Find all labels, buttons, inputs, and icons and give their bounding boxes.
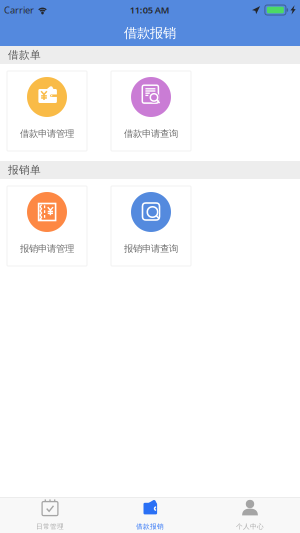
staticText: 借款申请查询	[124, 128, 178, 139]
button[interactable]: 借款申请管理	[7, 71, 87, 151]
staticText: 个人中心	[236, 522, 264, 531]
staticText: 报销申请管理	[20, 243, 74, 254]
staticText: 报销申请查询	[124, 243, 178, 254]
staticText: 借款申请管理	[20, 128, 74, 139]
button[interactable]: 报销申请查询	[111, 186, 191, 266]
staticText: Carrier	[4, 4, 34, 16]
button[interactable]: 借款报销	[100, 497, 200, 533]
button[interactable]: 报销申请管理	[7, 186, 87, 266]
staticText: 借款报销	[136, 522, 164, 531]
staticText: 11:05 AM	[130, 4, 170, 16]
staticText: 借款报销	[124, 25, 176, 41]
button[interactable]: 借款申请查询	[111, 71, 191, 151]
button[interactable]: 日常管理	[0, 497, 100, 533]
staticText: 借款单	[8, 48, 41, 61]
staticText: 日常管理	[36, 522, 64, 531]
staticText: 报销单	[8, 163, 41, 176]
button[interactable]: 个人中心	[200, 497, 300, 533]
